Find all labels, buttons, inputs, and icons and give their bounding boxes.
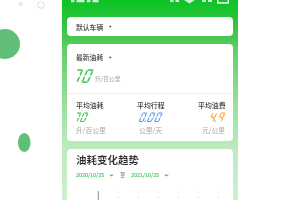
staticText: 2021/10/25 bbox=[131, 171, 160, 179]
button[interactable]: 平均行程 bbox=[126, 100, 176, 135]
staticText: 升/百公里 bbox=[76, 125, 106, 135]
other: Pick date bbox=[109, 173, 114, 178]
other: More bbox=[108, 24, 113, 29]
staticText: 最新油耗 bbox=[76, 52, 104, 62]
staticText: 2020/10/25 bbox=[76, 171, 105, 179]
staticText: 油耗变化趋势 bbox=[76, 152, 139, 167]
button[interactable]: 2021/10/25 bbox=[131, 171, 169, 179]
other: More bbox=[108, 55, 113, 60]
staticText: 公里/天 bbox=[139, 125, 163, 135]
staticText: 70 bbox=[70, 67, 92, 84]
button[interactable]: 2020/10/25 bbox=[76, 171, 114, 179]
staticText: 平均行程 bbox=[137, 100, 165, 110]
staticText: 4.9 bbox=[208, 111, 224, 123]
staticText: 平均油费 bbox=[198, 100, 226, 110]
staticText: 元/公里 bbox=[202, 125, 226, 135]
staticText: 平均油耗 bbox=[76, 100, 104, 110]
staticText: 升/百公里 bbox=[95, 74, 121, 82]
button[interactable]: 平均油费 bbox=[176, 100, 226, 135]
button[interactable]: 最新油耗 bbox=[67, 44, 233, 93]
staticText: 默认车辆 bbox=[76, 22, 104, 32]
button[interactable]: 默认车辆 bbox=[67, 17, 233, 36]
staticText: 至 bbox=[120, 171, 126, 179]
staticText: 70 bbox=[72, 111, 87, 123]
staticText: 0.00 bbox=[138, 111, 161, 123]
other: Pick date bbox=[164, 173, 169, 178]
button[interactable]: 平均油耗 bbox=[76, 100, 126, 135]
